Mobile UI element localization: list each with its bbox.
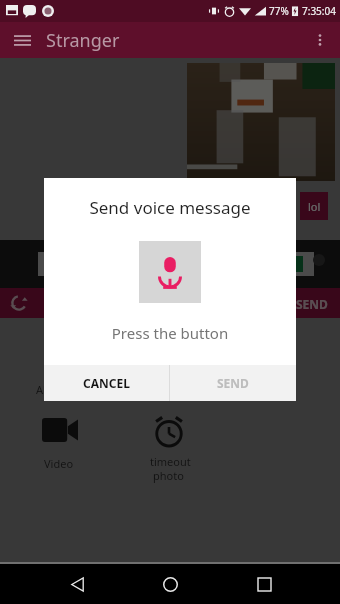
staticText: Stranger xyxy=(46,28,120,53)
staticText: timeout xyxy=(150,454,191,469)
other: Video xyxy=(42,418,78,442)
staticText: 77% xyxy=(269,4,289,18)
staticText: SEND xyxy=(217,375,249,391)
other: Timeout photo xyxy=(152,414,186,448)
staticText: lol xyxy=(308,199,321,214)
button[interactable]: Back xyxy=(60,567,94,601)
other: Refresh xyxy=(10,294,28,312)
staticText: photo xyxy=(153,468,184,483)
button[interactable]: Open navigation menu xyxy=(10,28,34,52)
button[interactable]: More options xyxy=(308,28,332,52)
staticText: Press the button xyxy=(44,323,296,343)
staticText: 7:35:04 xyxy=(302,4,336,18)
button[interactable]: SEND xyxy=(170,365,296,401)
button[interactable]: Record voice message xyxy=(139,241,201,303)
button[interactable]: Recent apps xyxy=(247,567,281,601)
button[interactable]: CANCEL xyxy=(44,365,169,401)
staticText: Video xyxy=(44,456,74,471)
staticText: CANCEL xyxy=(83,375,130,391)
staticText: Send voice message xyxy=(60,196,280,219)
staticText: Album xyxy=(36,382,70,397)
staticText: photo xyxy=(152,382,183,397)
staticText: SEND xyxy=(296,296,328,312)
button[interactable]: Home xyxy=(153,567,187,601)
